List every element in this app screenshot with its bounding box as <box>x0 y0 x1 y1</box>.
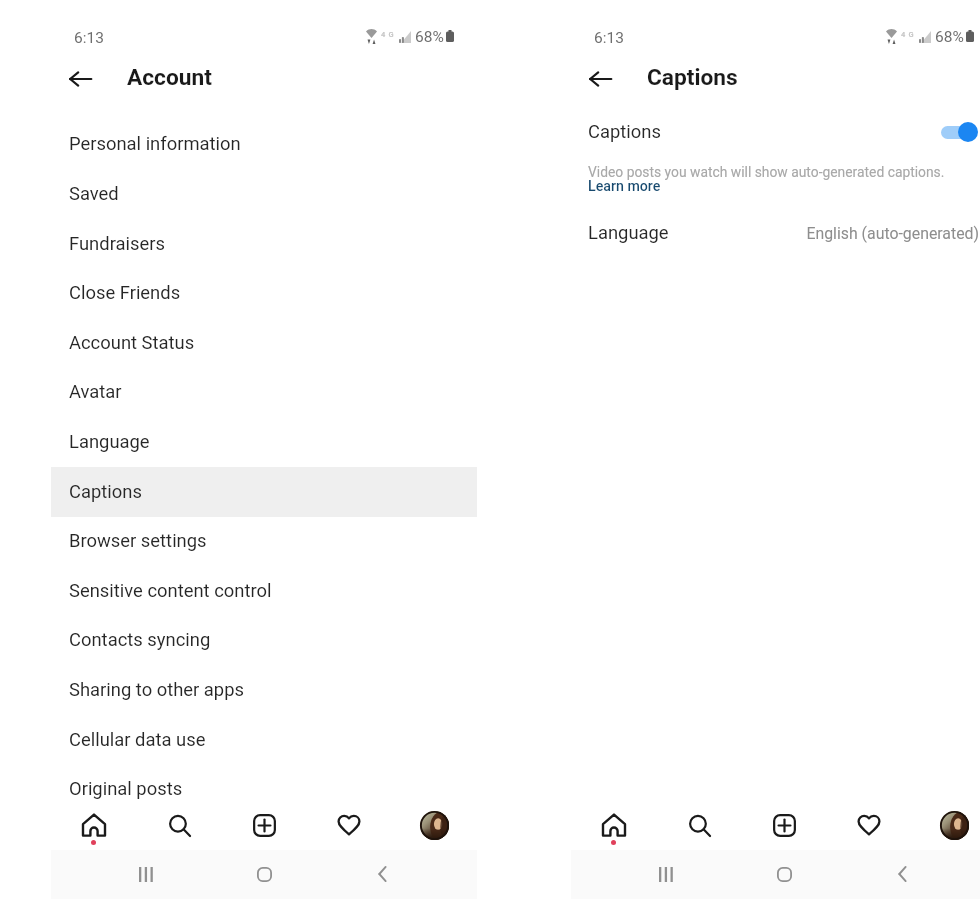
staticText: 4G <box>901 30 917 39</box>
button[interactable]: Cellular data use <box>51 715 477 765</box>
staticText: Learn more <box>588 178 661 195</box>
staticText: Language <box>588 222 669 244</box>
button[interactable]: Home <box>593 804 635 846</box>
button[interactable]: Original posts <box>51 764 477 814</box>
button[interactable]: Back <box>582 61 618 97</box>
button[interactable]: Account Status <box>51 318 477 368</box>
button[interactable]: Close Friends <box>51 268 477 318</box>
button[interactable]: Back <box>366 858 398 890</box>
staticText: Account Status <box>69 332 195 354</box>
button[interactable]: Back <box>886 858 918 890</box>
button[interactable]: Avatar <box>51 367 477 417</box>
staticText: 68% <box>415 28 444 46</box>
button[interactable]: Saved <box>51 169 477 219</box>
staticText: Close Friends <box>69 282 181 304</box>
button[interactable]: Personal information <box>51 119 477 169</box>
button[interactable]: Back <box>62 61 98 97</box>
staticText: Captions <box>69 481 142 503</box>
staticText: 68% <box>935 28 964 46</box>
button[interactable]: Search <box>678 804 720 846</box>
staticText: Sensitive content control <box>69 580 272 602</box>
staticText: Contacts syncing <box>69 629 211 651</box>
button[interactable]: New post <box>243 804 285 846</box>
staticText: Captions <box>647 64 738 91</box>
button[interactable]: Recents <box>650 858 682 890</box>
button[interactable]: Home <box>248 858 280 890</box>
button[interactable]: Search <box>158 804 200 846</box>
button[interactable]: Captions <box>51 467 477 517</box>
staticText: 6:13 <box>594 29 624 47</box>
button[interactable]: Browser settings <box>51 516 477 566</box>
button[interactable]: Profile <box>933 804 975 846</box>
button[interactable]: Home <box>768 858 800 890</box>
button[interactable] <box>571 108 980 156</box>
staticText: Original posts <box>69 778 183 800</box>
staticText: Avatar <box>69 381 122 403</box>
button[interactable]: Contacts syncing <box>51 615 477 665</box>
staticText: English (auto-generated) <box>806 224 979 243</box>
staticText: Language <box>69 431 150 453</box>
button[interactable] <box>571 209 980 257</box>
staticText: Cellular data use <box>69 729 206 751</box>
staticText: Saved <box>69 183 119 205</box>
staticText: Video posts you watch will show auto-gen… <box>588 164 945 180</box>
button[interactable]: Activity <box>848 804 890 846</box>
staticText: 6:13 <box>74 29 104 47</box>
staticText: Captions <box>588 121 661 143</box>
staticText: Fundraisers <box>69 233 165 255</box>
button[interactable]: Language <box>51 417 477 467</box>
button[interactable]: New post <box>763 804 805 846</box>
button[interactable]: Fundraisers <box>51 219 477 269</box>
button[interactable]: Activity <box>328 804 370 846</box>
button[interactable]: Home <box>73 804 115 846</box>
staticText: Account <box>127 64 212 91</box>
staticText: Sharing to other apps <box>69 679 245 701</box>
button[interactable]: Sharing to other apps <box>51 665 477 715</box>
button[interactable]: Recents <box>130 858 162 890</box>
staticText: Browser settings <box>69 530 207 552</box>
staticText: Personal information <box>69 133 241 155</box>
button[interactable]: Learn more <box>588 178 661 195</box>
button[interactable]: Sensitive content control <box>51 566 477 616</box>
button[interactable]: Profile <box>413 804 455 846</box>
staticText: 4G <box>381 30 397 39</box>
